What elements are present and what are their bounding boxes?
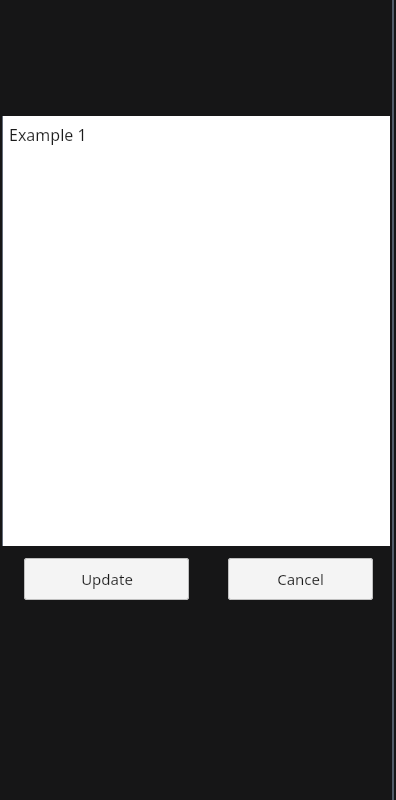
staticText: Update [81,569,133,589]
button[interactable]: Cancel [228,558,373,600]
staticText: Cancel [277,569,324,589]
button[interactable]: Update [24,558,189,600]
staticText: Example 1 [9,124,87,146]
button[interactable]: Example 1 [2,116,390,546]
